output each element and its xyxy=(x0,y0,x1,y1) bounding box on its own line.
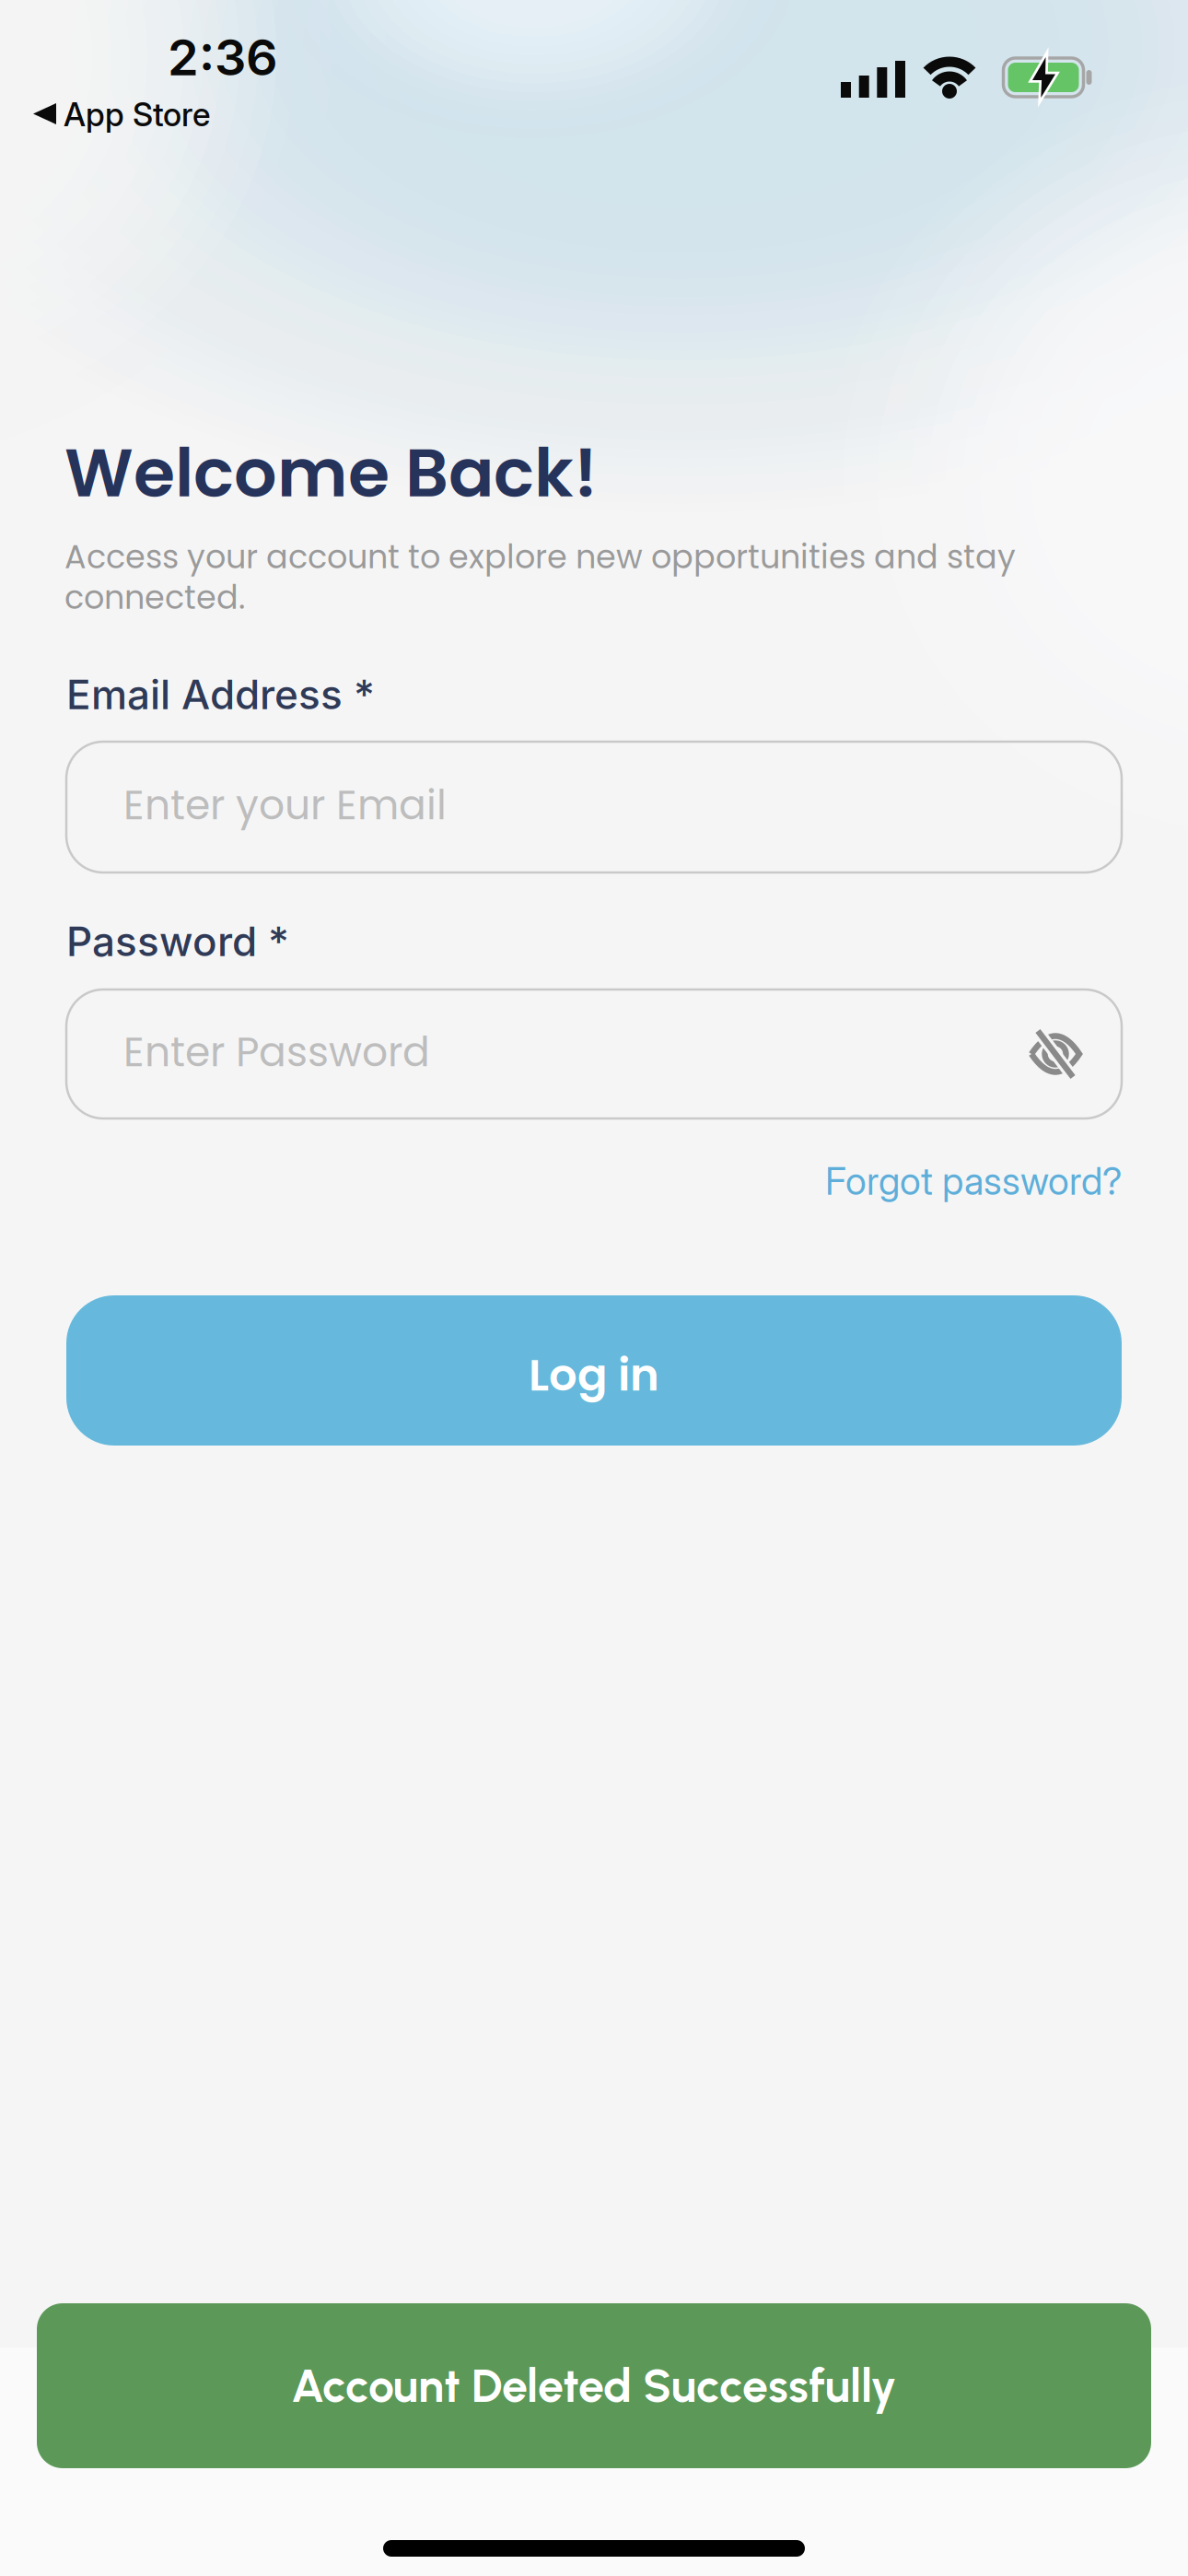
staticText: 2:36 xyxy=(168,27,278,87)
staticText: Email Address * xyxy=(66,670,375,719)
staticText: connected. xyxy=(64,575,245,620)
button[interactable]: Show password xyxy=(1030,1028,1081,1080)
staticText: Enter your Email xyxy=(123,777,447,833)
staticText: Enter Password xyxy=(123,1024,430,1080)
button[interactable]: Log in xyxy=(66,1295,1122,1446)
staticText: Password * xyxy=(66,917,289,966)
staticText: App Store xyxy=(64,95,211,134)
staticText: Access your account to explore new oppor… xyxy=(64,534,1016,580)
staticText: Account Deleted Successfully xyxy=(291,2358,897,2413)
staticText: Forgot password? xyxy=(825,1158,1122,1204)
staticText: Welcome Back! xyxy=(64,426,598,520)
staticText: Log in xyxy=(529,1344,659,1406)
button[interactable]: Back to App Store xyxy=(33,91,214,137)
button[interactable]: Forgot password? xyxy=(825,1158,1122,1204)
